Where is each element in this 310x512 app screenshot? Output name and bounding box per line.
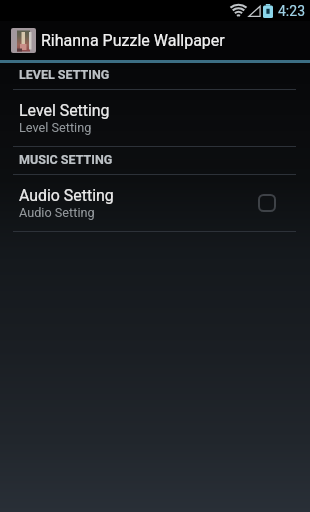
staticText: Rihanna Puzzle Wallpaper <box>41 31 225 50</box>
staticText: 4:23 <box>278 3 305 19</box>
staticText: LEVEL SETTING <box>19 67 110 82</box>
staticText: MUSIC SETTING <box>19 152 113 167</box>
staticText: Level Setting <box>19 101 110 120</box>
button[interactable]: Rihanna Puzzle Wallpaper <box>0 21 310 60</box>
button[interactable]: Audio Setting <box>0 175 310 231</box>
button[interactable]: Level Setting <box>0 90 310 146</box>
staticText: Level Setting <box>19 120 92 135</box>
staticText: Audio Setting <box>19 205 95 220</box>
staticText: Audio Setting <box>19 186 114 205</box>
button[interactable]: Audio Setting checkbox <box>256 192 278 214</box>
